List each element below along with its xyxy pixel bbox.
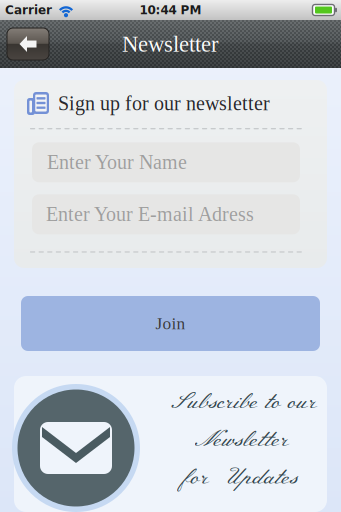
staticText: Sign up for our newsletter: [58, 92, 270, 114]
staticText: Newsletter: [122, 31, 219, 56]
staticText: Subscribe to our: [164, 388, 316, 417]
button[interactable]: Join: [21, 296, 320, 351]
staticText: 10:44 PM: [139, 3, 201, 17]
staticText: Join: [155, 314, 185, 333]
staticText: Newsletter: [192, 426, 288, 454]
staticText: Enter Your E-mail Adress: [46, 203, 254, 225]
staticText: Carrier: [5, 3, 52, 17]
staticText: for Updates: [182, 463, 298, 492]
staticText: Enter Your Name: [47, 151, 187, 173]
button[interactable]: Back: [7, 28, 49, 60]
